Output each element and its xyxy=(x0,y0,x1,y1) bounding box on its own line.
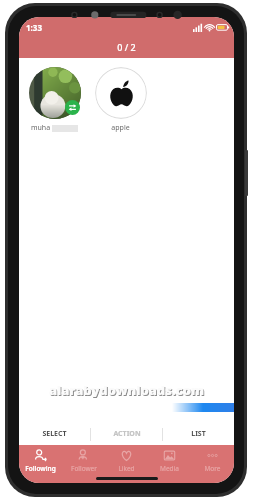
other: Swap xyxy=(65,100,80,115)
button[interactable]: More xyxy=(191,445,234,475)
button[interactable]: ACTION xyxy=(91,423,162,445)
staticText: muha xyxy=(31,123,51,133)
button[interactable]: Following xyxy=(19,445,62,475)
staticText: 0 / 2 xyxy=(117,41,136,53)
button[interactable]: Liked xyxy=(105,445,148,475)
staticText: Follower xyxy=(71,464,97,473)
staticText: alarabydownloads.com xyxy=(49,381,204,397)
staticText: alarabydownloads.com xyxy=(50,382,205,398)
staticText: 1:33 xyxy=(26,22,42,33)
button[interactable]: apple xyxy=(93,67,148,133)
button[interactable]: Swap xyxy=(27,67,82,133)
button[interactable]: SELECT xyxy=(19,423,90,445)
staticText: More xyxy=(204,464,221,473)
staticText: Liked xyxy=(118,464,135,473)
staticText: ACTION xyxy=(113,429,141,439)
staticText: Following xyxy=(25,464,56,473)
button[interactable]: Media xyxy=(148,445,191,475)
staticText: apple xyxy=(111,123,130,133)
staticText: LIST xyxy=(191,429,206,439)
staticText: Media xyxy=(160,464,179,473)
button[interactable]: LIST xyxy=(163,423,234,445)
button[interactable]: Follower xyxy=(62,445,105,475)
staticText: SELECT xyxy=(42,429,67,439)
